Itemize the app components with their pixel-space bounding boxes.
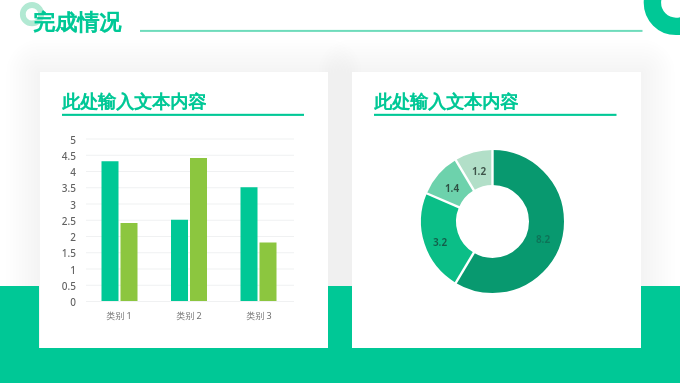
button[interactable]: 此处输入文本内容: [62, 91, 212, 113]
staticText: 3.2: [425, 235, 455, 249]
staticText: 3.5: [46, 181, 76, 194]
staticText: 2: [46, 230, 76, 243]
staticText: 2.5: [46, 214, 76, 227]
staticText: 完成情况: [33, 9, 121, 37]
staticText: 此处输入文本内容: [62, 91, 206, 113]
staticText: 8.2: [528, 232, 558, 246]
staticText: 5: [46, 133, 76, 146]
staticText: 3: [46, 198, 76, 211]
staticText: 类别 2: [159, 309, 219, 323]
staticText: 4: [46, 165, 76, 178]
staticText: 4.5: [46, 149, 76, 162]
staticText: 0: [46, 295, 76, 308]
staticText: 类别 1: [89, 309, 149, 323]
staticText: 1.5: [46, 246, 76, 259]
staticText: 0.5: [46, 279, 76, 292]
staticText: 1.2: [464, 164, 494, 178]
staticText: 1.4: [437, 181, 467, 195]
staticText: 1: [46, 263, 76, 276]
staticText: 此处输入文本内容: [374, 91, 518, 113]
button[interactable]: 此处输入文本内容: [374, 91, 524, 113]
button[interactable]: 完成情况: [33, 9, 133, 39]
staticText: 类别 3: [229, 309, 289, 323]
